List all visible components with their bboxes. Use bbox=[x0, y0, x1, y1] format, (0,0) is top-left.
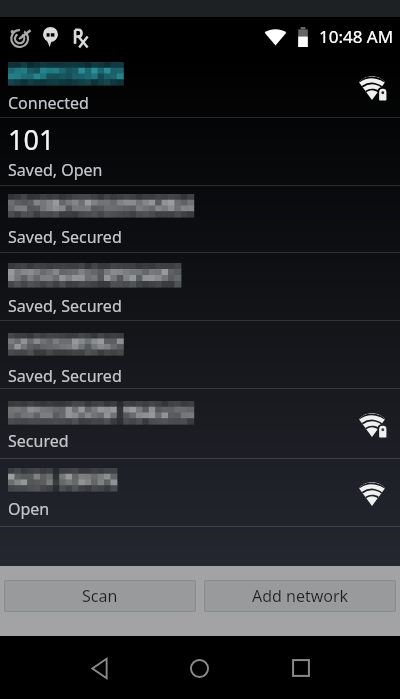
staticText: 10:48 AM bbox=[319, 25, 394, 48]
staticText: Add network bbox=[252, 585, 349, 607]
button[interactable]: Recent apps bbox=[277, 644, 325, 692]
staticText: 101 bbox=[8, 121, 55, 158]
button[interactable]: Connected bbox=[0, 56, 400, 118]
button[interactable]: Saved, Secured bbox=[0, 321, 400, 389]
button[interactable]: Home bbox=[175, 644, 223, 692]
button[interactable]: Scan bbox=[4, 580, 196, 612]
button[interactable]: Saved, Secured bbox=[0, 253, 400, 321]
button[interactable]: Add network bbox=[204, 580, 396, 612]
button[interactable]: 101 bbox=[0, 118, 400, 186]
button[interactable]: Back bbox=[75, 644, 123, 692]
button[interactable]: Secured bbox=[0, 389, 400, 459]
button[interactable]: Saved, Secured bbox=[0, 186, 400, 253]
staticText: Scan bbox=[82, 585, 118, 607]
staticText: Saved, Secured bbox=[8, 226, 122, 248]
staticText: Saved, Secured bbox=[8, 365, 122, 387]
staticText: Saved, Secured bbox=[8, 295, 122, 317]
staticText: Secured bbox=[8, 430, 69, 452]
staticText: Connected bbox=[8, 92, 89, 114]
staticText: Open bbox=[8, 498, 50, 520]
staticText: Saved, Open bbox=[8, 159, 103, 181]
button[interactable]: Open bbox=[0, 459, 400, 527]
